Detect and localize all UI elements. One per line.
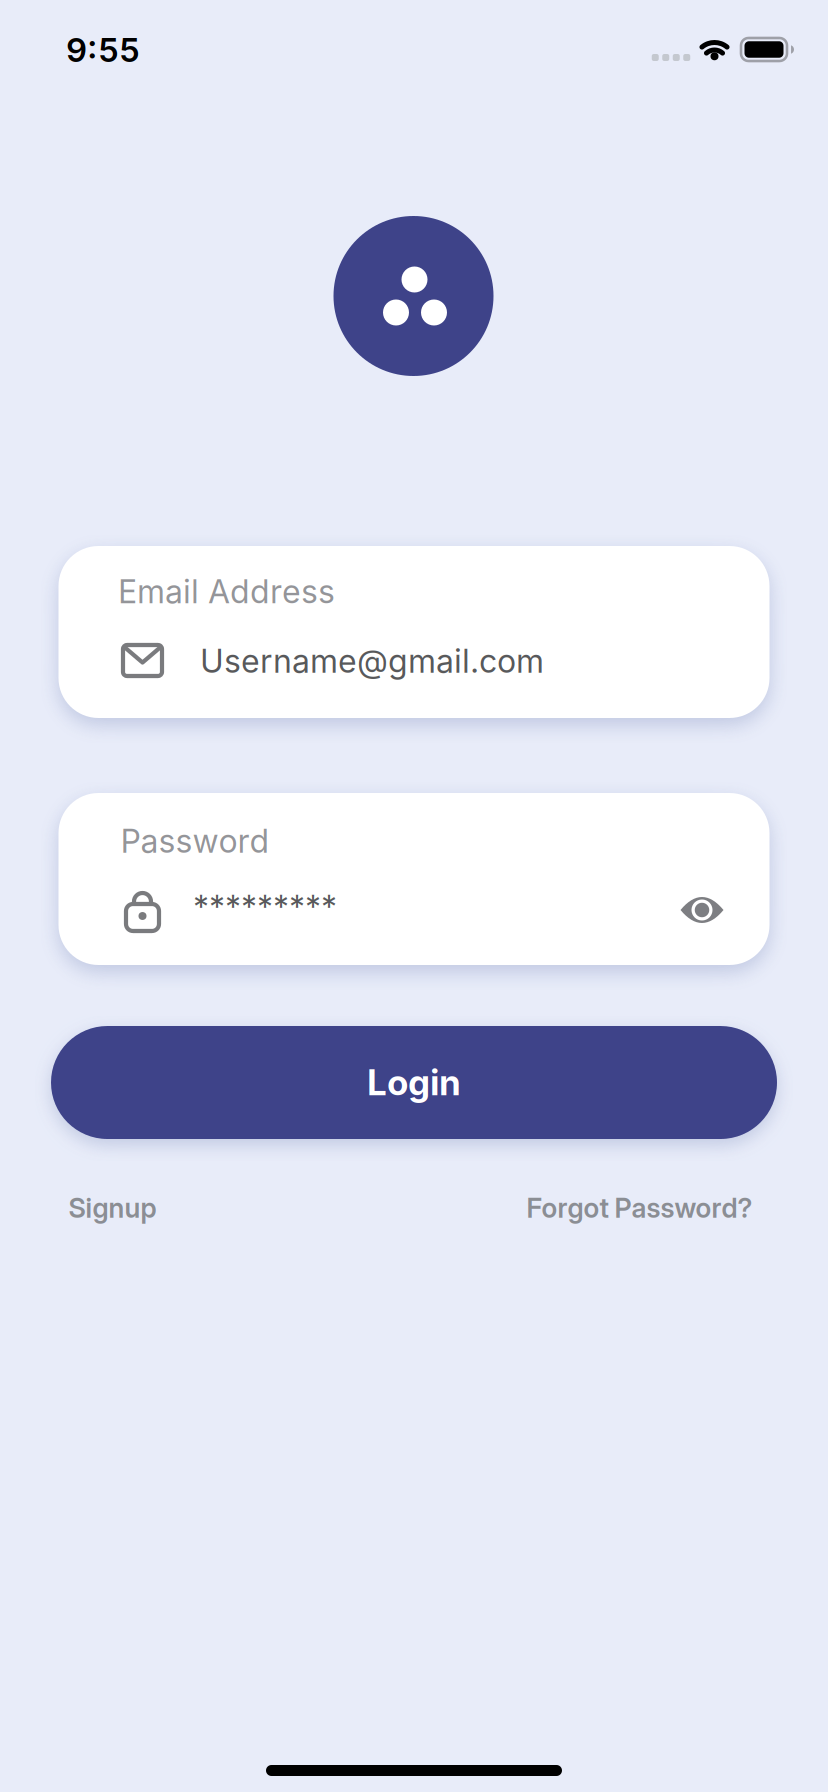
- button[interactable]: Email Address: [58, 546, 769, 718]
- button[interactable]: Show password: [679, 894, 725, 926]
- staticText: *********: [193, 888, 337, 926]
- staticText: Signup: [68, 1192, 156, 1224]
- button[interactable]: Password: [58, 793, 769, 965]
- staticText: Username@gmail.com: [200, 642, 544, 680]
- staticText: Password: [120, 822, 269, 860]
- staticText: Forgot Password?: [526, 1192, 752, 1224]
- button[interactable]: Forgot Password?: [526, 1192, 752, 1224]
- button[interactable]: Signup: [68, 1192, 156, 1224]
- staticText: Email Address: [118, 573, 335, 610]
- button[interactable]: Login: [51, 1026, 777, 1139]
- staticText: 9:55: [66, 30, 140, 69]
- staticText: Login: [367, 1062, 461, 1103]
